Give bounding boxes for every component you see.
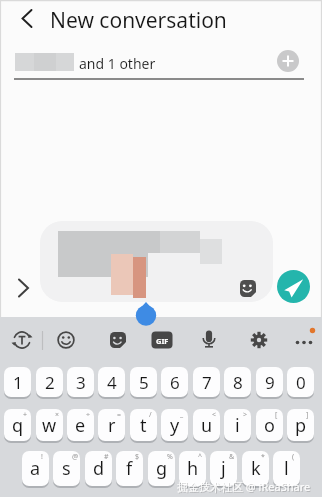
- staticText: g: [156, 456, 168, 481]
- staticText: /: [149, 410, 152, 420]
- button[interactable]: k: [242, 451, 269, 486]
- button[interactable]: 5: [130, 367, 157, 397]
- button[interactable]: 7: [193, 367, 220, 397]
- staticText: +: [23, 410, 28, 420]
- staticText: 8: [233, 371, 243, 394]
- staticText: [: [275, 410, 278, 420]
- button[interactable]: [40, 221, 273, 302]
- button[interactable]: [245, 326, 273, 354]
- staticText: j: [221, 456, 226, 481]
- button[interactable]: j: [210, 451, 237, 486]
- staticText: o: [264, 413, 275, 438]
- button[interactable]: o: [256, 409, 283, 441]
- button[interactable]: [52, 326, 80, 354]
- staticText: 5: [139, 371, 149, 394]
- button[interactable]: g: [148, 451, 175, 486]
- staticText: f: [126, 456, 133, 481]
- staticText: (: [292, 452, 295, 462]
- button[interactable]: d: [85, 451, 112, 486]
- staticText: @: [72, 452, 79, 462]
- staticText: t: [140, 413, 147, 438]
- staticText: ×: [55, 410, 60, 420]
- staticText: 2: [45, 371, 55, 394]
- staticText: ^: [198, 452, 203, 462]
- staticText: <: [212, 410, 217, 420]
- staticText: s: [62, 456, 71, 481]
- button[interactable]: [13, 5, 41, 33]
- button[interactable]: t: [130, 409, 157, 441]
- staticText: ]: [306, 410, 309, 420]
- button[interactable]: [195, 326, 223, 354]
- button[interactable]: 6: [161, 367, 188, 397]
- staticText: w: [42, 413, 57, 438]
- button[interactable]: 2: [36, 367, 63, 397]
- staticText: u: [201, 413, 213, 438]
- staticText: l: [284, 456, 289, 481]
- button[interactable]: 4: [98, 367, 125, 397]
- staticText: *: [261, 452, 265, 462]
- button[interactable]: l: [273, 451, 300, 486]
- staticText: !: [41, 452, 43, 462]
- button[interactable]: 8: [224, 367, 251, 397]
- button[interactable]: i: [224, 409, 251, 441]
- button[interactable]: [277, 270, 310, 303]
- button[interactable]: p: [287, 409, 314, 441]
- staticText: e: [75, 413, 86, 438]
- staticText: 9: [265, 371, 275, 394]
- staticText: d: [93, 456, 105, 481]
- button[interactable]: e: [67, 409, 94, 441]
- button[interactable]: [290, 326, 318, 354]
- button[interactable]: GIF: [152, 332, 173, 349]
- staticText: =: [117, 410, 122, 420]
- staticText: i: [235, 413, 240, 438]
- staticText: h: [187, 456, 199, 481]
- staticText: >: [243, 410, 248, 420]
- button[interactable]: [12, 276, 36, 300]
- button[interactable]: [238, 278, 258, 298]
- staticText: GIF: [156, 336, 169, 346]
- button[interactable]: 9: [256, 367, 283, 397]
- button[interactable]: r: [98, 409, 125, 441]
- staticText: r: [108, 413, 116, 438]
- button[interactable]: 0: [287, 367, 314, 397]
- button[interactable]: f: [116, 451, 143, 486]
- button[interactable]: [104, 326, 132, 354]
- staticText: 掘金技术社区 @ iReaShare: [178, 480, 312, 495]
- staticText: %: [167, 452, 173, 462]
- button[interactable]: w: [36, 409, 63, 441]
- staticText: _: [180, 410, 184, 420]
- button[interactable]: s: [53, 451, 80, 486]
- staticText: $: [135, 452, 140, 462]
- button[interactable]: [277, 50, 299, 72]
- button[interactable]: y: [161, 409, 188, 441]
- staticText: y: [170, 413, 180, 438]
- staticText: p: [295, 413, 307, 438]
- button[interactable]: 3: [67, 367, 94, 397]
- staticText: New conversation: [50, 6, 227, 35]
- staticText: k: [251, 456, 261, 481]
- staticText: #: [104, 452, 109, 462]
- staticText: a: [30, 456, 41, 481]
- button[interactable]: u: [193, 409, 220, 441]
- button[interactable]: 1: [4, 367, 31, 397]
- staticText: 3: [76, 371, 86, 394]
- staticText: 6: [170, 371, 180, 394]
- staticText: 7: [202, 371, 212, 394]
- staticText: 4: [107, 371, 117, 394]
- staticText: &: [229, 452, 235, 462]
- staticText: q: [12, 413, 24, 438]
- staticText: 掘金技术社区 @ iReaShare: [177, 479, 311, 494]
- button[interactable]: [8, 326, 36, 354]
- staticText: 1: [13, 371, 23, 394]
- button[interactable]: h: [179, 451, 206, 486]
- button[interactable]: q: [4, 409, 31, 441]
- staticText: ÷: [86, 410, 91, 420]
- staticText: 0: [296, 371, 306, 394]
- button[interactable]: a: [22, 451, 49, 486]
- staticText: and 1 other: [79, 54, 156, 73]
